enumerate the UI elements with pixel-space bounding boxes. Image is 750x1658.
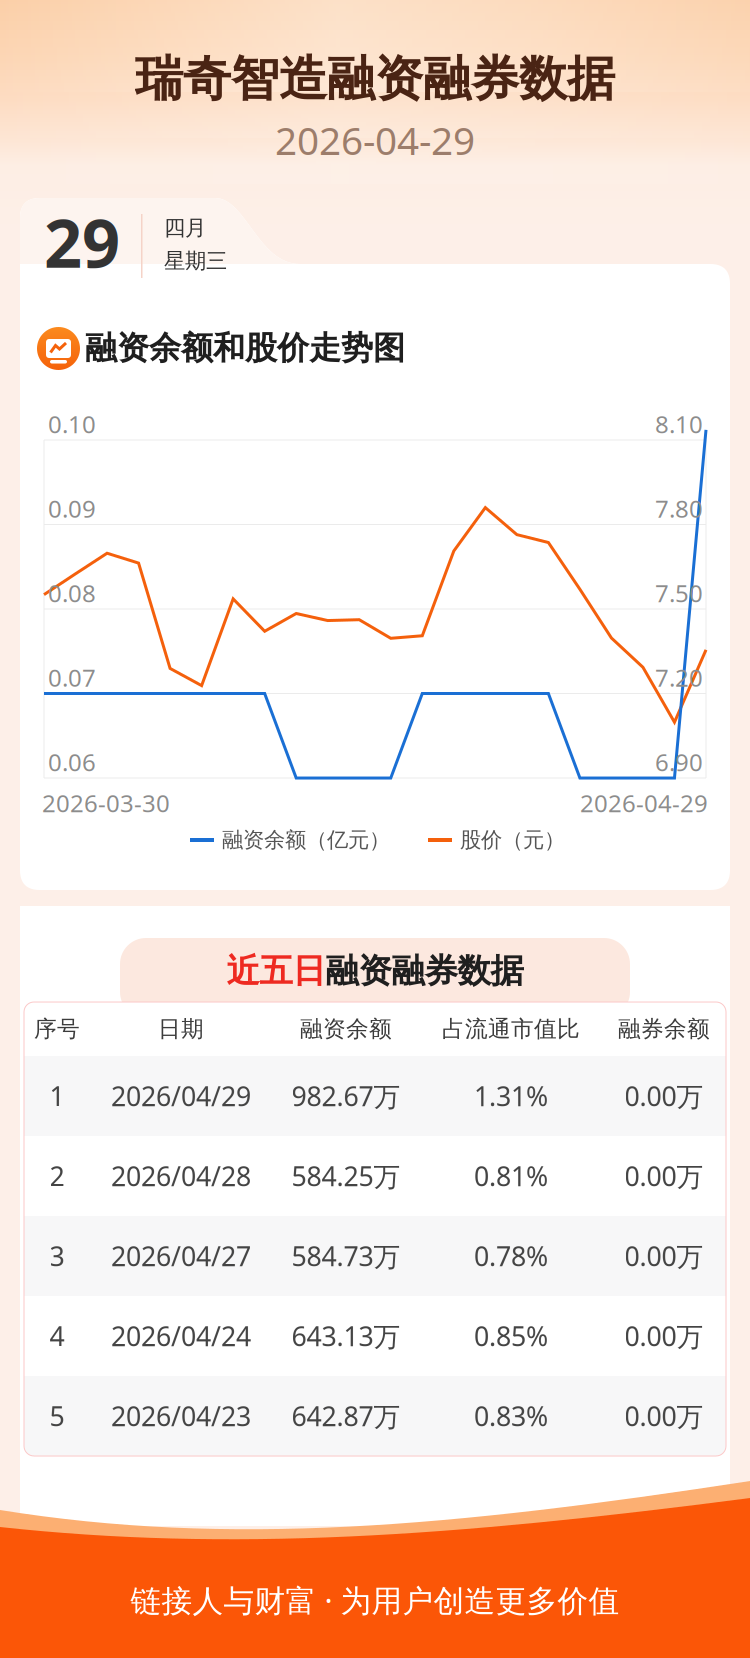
staticText: 2026-04-29 <box>275 114 475 166</box>
staticText: 0.81% <box>474 1158 548 1194</box>
staticText: 0.00万 <box>624 1078 703 1114</box>
staticText: 股价（元） <box>460 827 565 853</box>
staticText: 融资融券数据 <box>325 950 523 991</box>
staticText: 0.08 <box>48 577 96 609</box>
staticText: 0.83% <box>474 1398 548 1434</box>
staticText: 0.85% <box>474 1318 548 1354</box>
staticText: 融资余额 <box>300 1015 392 1043</box>
staticText: 8.10 <box>655 408 703 440</box>
staticText: 2026/04/23 <box>111 1398 251 1434</box>
staticText: 占流通市值比 <box>442 1015 580 1043</box>
staticText: 2026/04/27 <box>111 1238 251 1274</box>
staticText: 0.10 <box>48 408 96 440</box>
staticText: 982.67万 <box>291 1078 400 1114</box>
staticText: 3 <box>49 1238 64 1274</box>
staticText: 1 <box>49 1078 64 1114</box>
staticText: 融资余额和股价走势图 <box>85 328 405 368</box>
staticText: 7.20 <box>655 662 703 693</box>
staticText: 7.80 <box>655 493 703 524</box>
staticText: 642.87万 <box>291 1398 400 1434</box>
staticText: 融券余额 <box>618 1015 710 1043</box>
staticText: 近五日 <box>226 950 325 991</box>
staticText: 584.73万 <box>291 1238 400 1274</box>
staticText: 0.00万 <box>624 1158 703 1194</box>
staticText: 2026/04/29 <box>111 1078 251 1114</box>
staticText: 0.00万 <box>624 1398 703 1434</box>
staticText: 6.90 <box>655 746 703 778</box>
staticText: 0.00万 <box>624 1238 703 1274</box>
staticText: 1.31% <box>474 1078 548 1114</box>
staticText: 584.25万 <box>291 1158 400 1194</box>
staticText: 7.50 <box>655 577 703 609</box>
staticText: 链接人与财富 · 为用户创造更多价值 <box>130 1580 619 1620</box>
staticText: 星期三 <box>164 248 227 274</box>
staticText: 2026/04/28 <box>111 1158 251 1194</box>
staticText: 四月 <box>164 215 206 241</box>
staticText: 2026-03-30 <box>42 787 170 819</box>
staticText: 0.78% <box>474 1238 548 1274</box>
staticText: 2 <box>49 1158 64 1194</box>
staticText: 2026/04/24 <box>111 1318 251 1354</box>
staticText: 643.13万 <box>291 1318 400 1354</box>
staticText: 日期 <box>158 1015 204 1043</box>
staticText: 0.07 <box>48 662 96 693</box>
staticText: 2026-04-29 <box>580 787 708 819</box>
staticText: 0.09 <box>48 493 96 524</box>
staticText: 29 <box>44 198 120 286</box>
staticText: 5 <box>49 1398 64 1434</box>
staticText: 融资余额（亿元） <box>222 827 390 853</box>
staticText: 4 <box>49 1318 64 1354</box>
staticText: 0.00万 <box>624 1318 703 1354</box>
staticText: 瑞奇智造融资融券数据 <box>135 49 615 108</box>
staticText: 0.06 <box>48 746 96 778</box>
staticText: 序号 <box>34 1015 80 1043</box>
